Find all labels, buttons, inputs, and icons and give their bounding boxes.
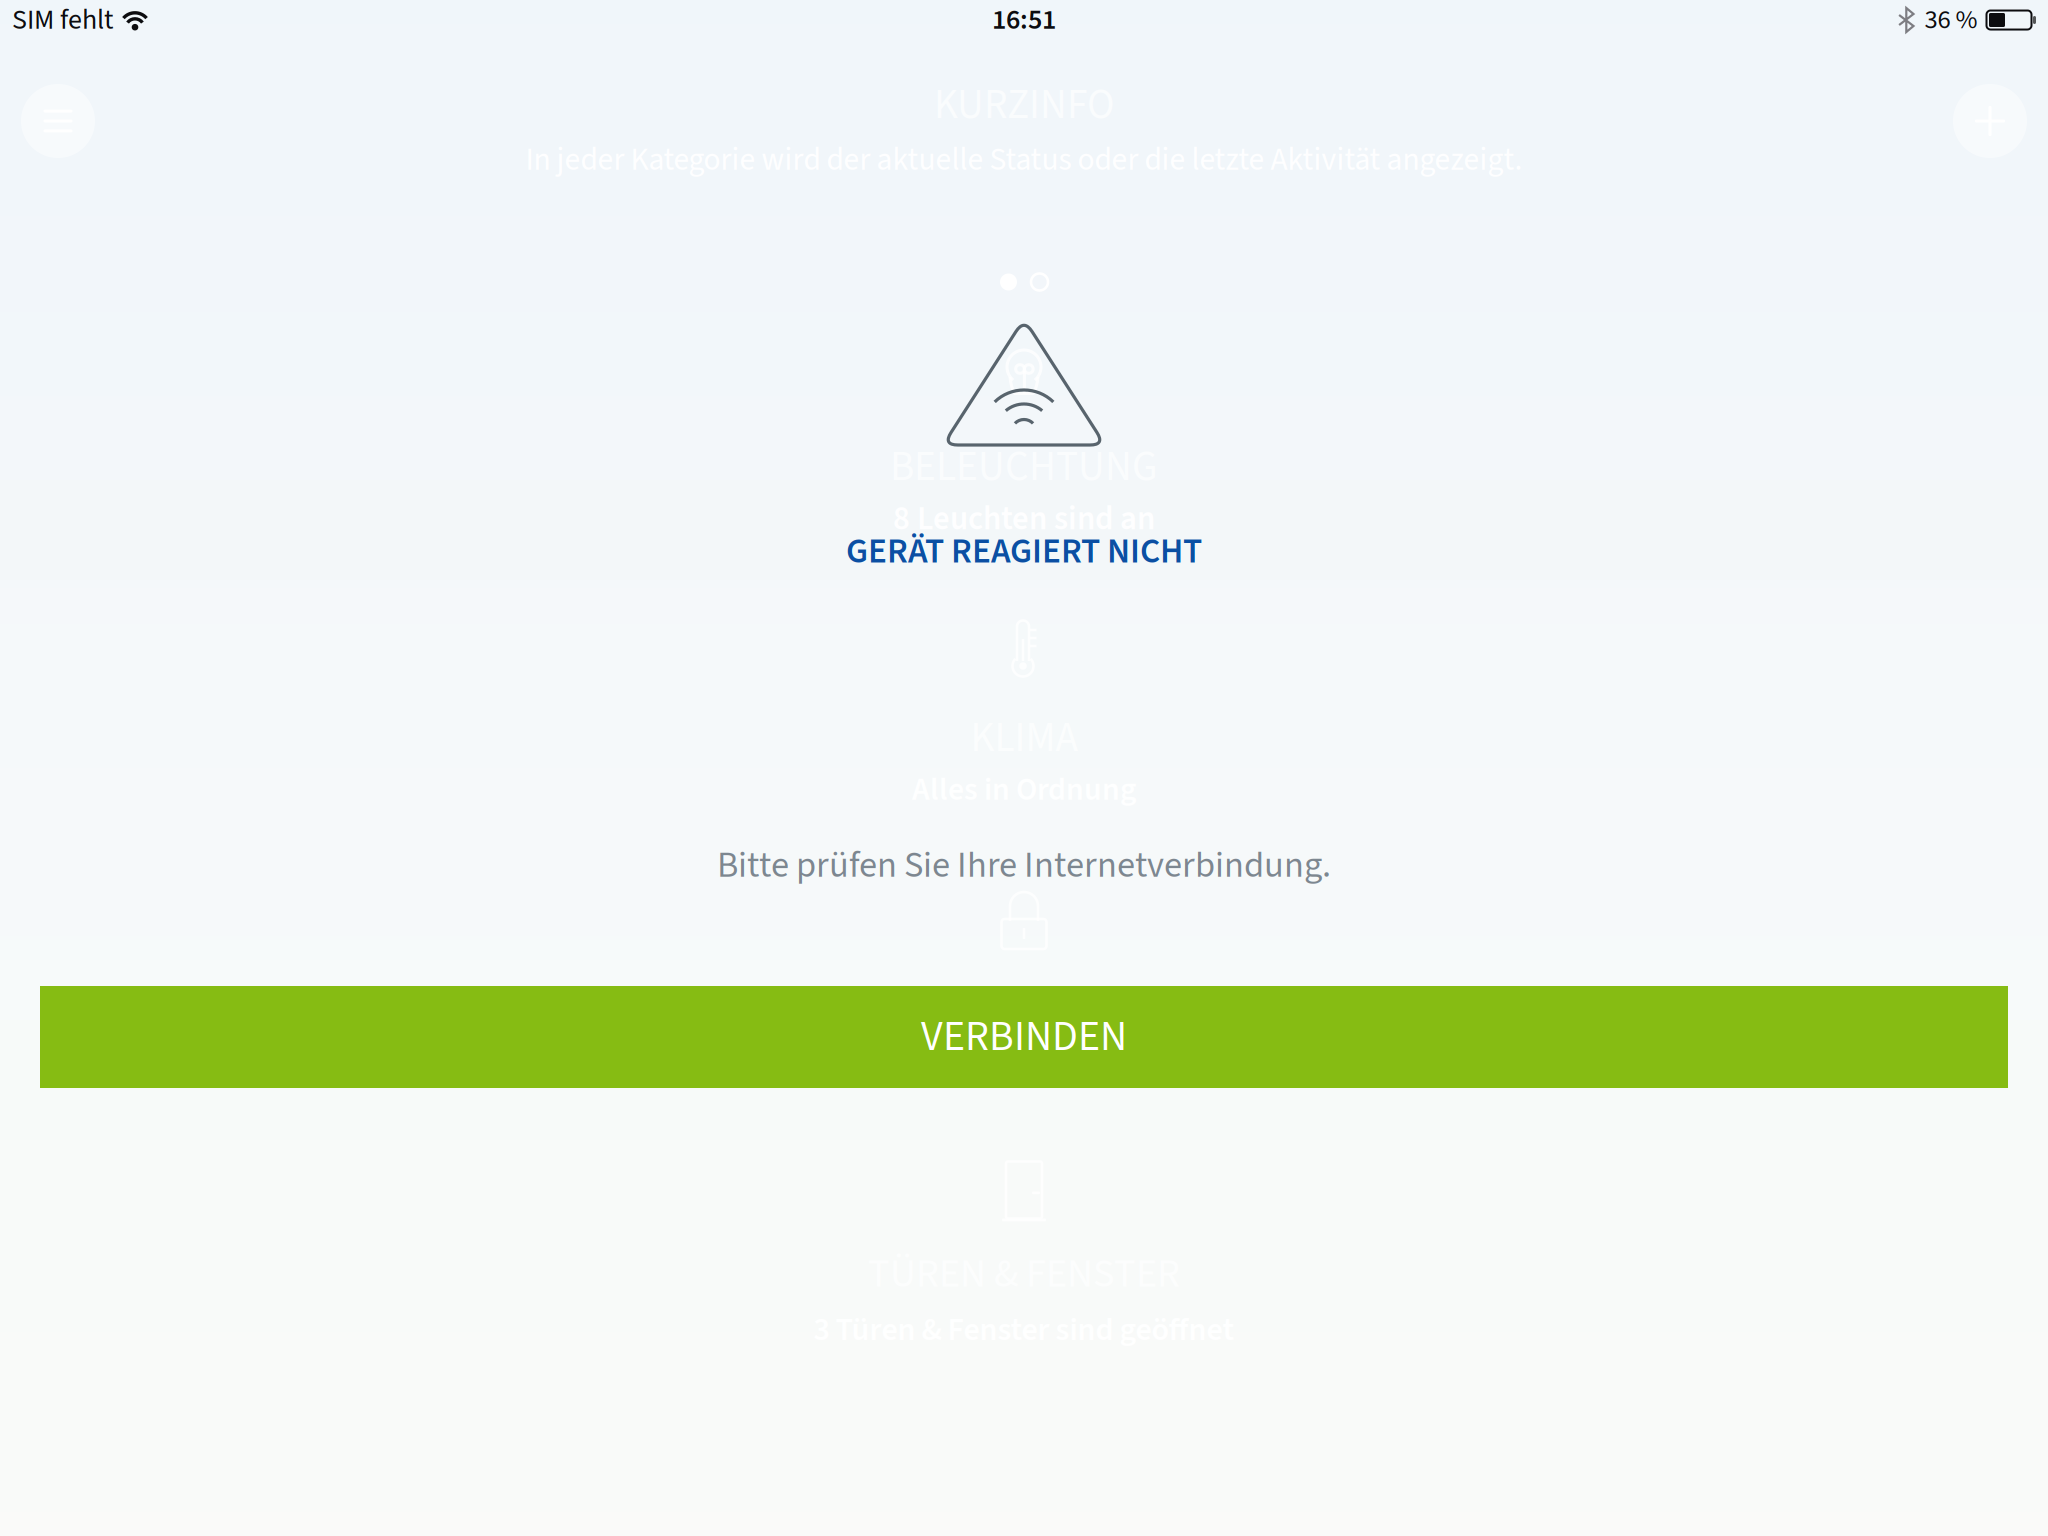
staticText: BELEUCHTUNG <box>890 438 1158 496</box>
staticText: In jeder Kategorie wird der aktuelle Sta… <box>525 138 1522 182</box>
staticText: 16:51 <box>992 0 1056 40</box>
staticText: Bitte prüfen Sie Ihre Internetverbindung… <box>717 840 1331 891</box>
staticText: GERÄT REAGIERT NICHT <box>846 526 1202 576</box>
staticText: VERBINDEN <box>921 1007 1127 1067</box>
staticText: 8 Leuchten sind an <box>893 496 1155 542</box>
staticText: KURZINFO <box>934 76 1114 134</box>
button[interactable]: Menü <box>21 84 95 158</box>
button[interactable]: VERBINDEN <box>40 986 2008 1088</box>
staticText: SIM fehlt <box>12 0 113 40</box>
staticText: 36 % <box>1924 1 1977 39</box>
